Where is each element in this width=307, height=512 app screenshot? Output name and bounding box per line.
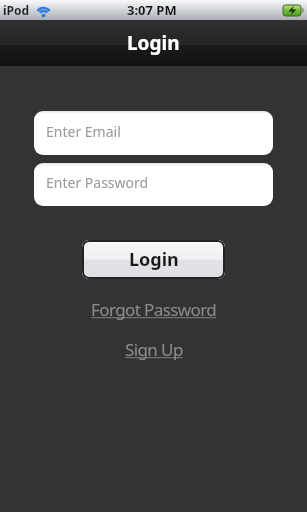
- staticText: Login: [127, 30, 180, 56]
- staticText: Enter Email: [46, 122, 121, 141]
- button[interactable]: Login: [82, 240, 225, 279]
- staticText: iPod: [3, 2, 30, 18]
- staticText: 3:07 PM: [127, 1, 177, 19]
- button[interactable]: Enter Email: [34, 111, 273, 155]
- staticText: Login: [129, 247, 179, 272]
- staticText: Enter Password: [46, 173, 149, 192]
- button[interactable]: Forgot Password: [91, 298, 217, 321]
- button[interactable]: Enter Password: [34, 163, 273, 206]
- button[interactable]: Sign Up: [125, 338, 183, 361]
